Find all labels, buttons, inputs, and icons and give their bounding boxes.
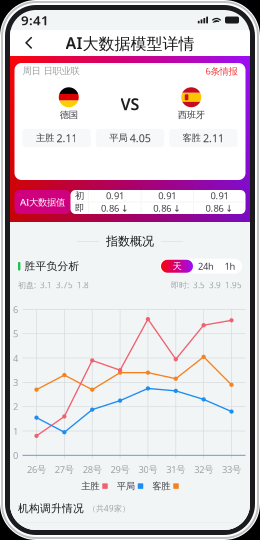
- staticText: 9:41: [21, 11, 49, 29]
- staticText: VS: [120, 93, 139, 115]
- staticText: 27号: [55, 463, 74, 476]
- staticText: 3.1 3.75 1.8: [36, 280, 89, 290]
- staticText: 天: [172, 260, 181, 272]
- staticText: 26号: [27, 463, 46, 476]
- staticText: 2.11: [203, 131, 224, 145]
- staticText: 3: [13, 376, 18, 389]
- button[interactable]: 客胜: [169, 129, 237, 147]
- staticText: 0.91: [158, 190, 176, 202]
- staticText: 周日 日职业联: [22, 65, 79, 77]
- staticText: 29号: [111, 463, 130, 476]
- staticText: 6: [13, 303, 18, 316]
- staticText: 2: [13, 400, 18, 413]
- staticText: 4.05: [130, 131, 151, 145]
- staticText: （共49家）: [88, 503, 130, 514]
- staticText: 3.5 3.9 1.95: [189, 280, 242, 290]
- staticText: 30号: [138, 463, 157, 476]
- staticText: 0.91: [211, 190, 229, 202]
- staticText: 32号: [194, 463, 213, 476]
- staticText: 0.86 ↓: [153, 202, 181, 214]
- staticText: 1: [13, 425, 18, 437]
- staticText: 28号: [83, 463, 102, 476]
- staticText: 6条情报: [205, 65, 237, 77]
- staticText: 平局: [117, 480, 135, 492]
- staticText: 0.91: [106, 190, 124, 202]
- staticText: 初盘:: [18, 280, 36, 290]
- button[interactable]: 天: [161, 260, 193, 273]
- button[interactable]: 平局: [96, 129, 164, 147]
- staticText: 90%: [121, 528, 139, 540]
- button[interactable]: 主胜: [22, 129, 91, 147]
- staticText: 平局: [109, 132, 127, 144]
- staticText: 0.86 ↓: [101, 202, 129, 214]
- staticText: 即时:: [171, 280, 189, 290]
- button[interactable]: 返回: [16, 30, 42, 56]
- staticText: 指数概况: [106, 234, 154, 249]
- button[interactable]: 24h: [193, 260, 219, 273]
- staticText: 即: [75, 202, 84, 214]
- staticText: 0.86 ↓: [206, 202, 234, 214]
- staticText: AI大数据模型详情: [65, 32, 194, 54]
- staticText: 4: [13, 352, 18, 364]
- staticText: 主胜: [36, 132, 54, 144]
- staticText: 24h: [198, 260, 214, 272]
- staticText: 西班牙: [178, 109, 205, 121]
- staticText: 客胜: [152, 480, 170, 492]
- staticText: 初: [75, 190, 84, 201]
- staticText: 机构调升情况: [18, 502, 84, 515]
- staticText: 2.11: [56, 131, 77, 145]
- staticText: 胜平负分析: [24, 260, 79, 273]
- staticText: 5: [13, 327, 18, 340]
- staticText: 1h: [224, 260, 235, 272]
- staticText: 主胜: [81, 480, 99, 492]
- staticText: 33号: [222, 463, 241, 476]
- button[interactable]: 1h: [219, 260, 241, 273]
- staticText: 德国: [60, 109, 78, 121]
- staticText: 0: [13, 449, 18, 462]
- staticText: 客胜: [183, 132, 201, 144]
- staticText: 31号: [166, 463, 185, 476]
- staticText: AI大数据值: [20, 196, 65, 208]
- button[interactable]: 6条情报: [205, 65, 237, 77]
